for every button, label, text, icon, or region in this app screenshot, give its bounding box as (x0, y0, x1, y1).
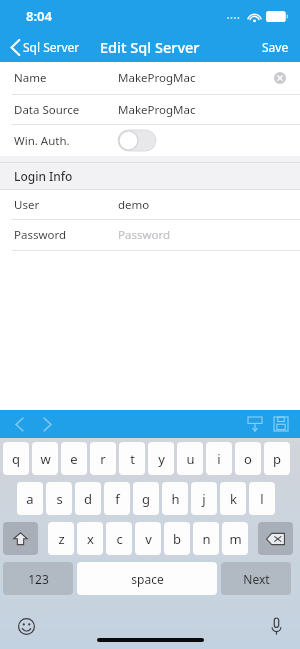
staticText: m (229, 530, 242, 548)
button[interactable]: Emoji (14, 614, 39, 639)
button[interactable]: a (17, 482, 43, 515)
staticText: Win. Auth. (14, 133, 118, 149)
button[interactable]: g (133, 482, 159, 515)
button[interactable]: Save (270, 413, 292, 435)
button[interactable]: Clear text (269, 67, 291, 89)
staticText: z (58, 530, 65, 548)
button[interactable]: z (48, 522, 74, 555)
staticText: g (142, 490, 150, 508)
button[interactable]: e (61, 442, 87, 475)
staticText: space (131, 571, 164, 587)
button[interactable]: l (249, 482, 275, 515)
button[interactable]: q (3, 442, 29, 475)
button[interactable]: Backspace (258, 522, 293, 555)
button[interactable]: Windows Authentication toggle (118, 130, 156, 151)
staticText: demo (118, 197, 150, 213)
button[interactable]: x (77, 522, 103, 555)
staticText: MakeProgMac (118, 70, 196, 86)
button[interactable]: Name (0, 62, 300, 94)
staticText: a (26, 490, 34, 508)
staticText: p (273, 450, 281, 468)
staticText: x (87, 530, 94, 548)
button[interactable]: k (220, 482, 246, 515)
staticText: d (84, 490, 92, 508)
staticText: e (70, 450, 78, 468)
staticText: i (217, 450, 221, 468)
staticText: k (230, 490, 237, 508)
staticText: l (260, 490, 264, 508)
staticText: Save (262, 39, 289, 55)
button[interactable]: o (235, 442, 261, 475)
staticText: Edit Sql Server (100, 37, 200, 57)
staticText: y (158, 450, 165, 468)
button[interactable]: i (206, 442, 232, 475)
button[interactable]: f (104, 482, 130, 515)
button[interactable]: r (90, 442, 116, 475)
button[interactable]: c (106, 522, 132, 555)
button[interactable]: Dictation (267, 614, 286, 639)
button[interactable]: j (191, 482, 217, 515)
button[interactable]: Data Source (0, 95, 300, 124)
button[interactable]: Password (0, 220, 300, 250)
button[interactable]: space (77, 562, 217, 595)
staticText: 8:04 (26, 7, 52, 25)
button[interactable]: 123 (3, 562, 73, 595)
button[interactable]: u (177, 442, 203, 475)
staticText: w (40, 450, 51, 468)
staticText: Data Source (14, 102, 118, 118)
button[interactable]: b (164, 522, 190, 555)
button[interactable]: d (75, 482, 101, 515)
staticText: f (115, 490, 120, 508)
staticText: Login Info (14, 168, 73, 184)
button[interactable]: Hide keyboard (244, 413, 266, 435)
button[interactable]: m (222, 522, 248, 555)
staticText: MakeProgMac (118, 102, 196, 118)
staticText: Password (118, 227, 171, 243)
staticText: r (100, 450, 106, 468)
staticText: q (12, 450, 20, 468)
staticText: s (56, 490, 63, 508)
button[interactable]: y (148, 442, 174, 475)
button[interactable]: Next field (38, 413, 57, 436)
button[interactable]: Sql Server (8, 36, 83, 58)
staticText: t (130, 450, 135, 468)
staticText: Sql Server (23, 39, 80, 55)
button[interactable]: Save (251, 33, 300, 61)
button[interactable]: User (0, 190, 300, 219)
button[interactable]: v (135, 522, 161, 555)
button[interactable]: n (193, 522, 219, 555)
button[interactable]: t (119, 442, 145, 475)
staticText: Name (14, 70, 118, 86)
staticText: n (202, 530, 211, 548)
button[interactable]: w (32, 442, 58, 475)
staticText: u (186, 450, 195, 468)
staticText: c (116, 530, 123, 548)
staticText: h (171, 490, 180, 508)
button[interactable]: p (264, 442, 290, 475)
button[interactable]: h (162, 482, 188, 515)
button[interactable]: Next (221, 562, 291, 595)
button[interactable]: Shift (3, 522, 38, 555)
staticText: j (202, 490, 206, 508)
staticText: Next (243, 571, 270, 587)
staticText: Password (14, 227, 118, 243)
staticText: o (244, 450, 252, 468)
button[interactable]: Win. Auth. (0, 125, 300, 156)
staticText: v (145, 530, 152, 548)
staticText: User (14, 197, 118, 213)
staticText: b (173, 530, 181, 548)
button[interactable]: Previous field (10, 413, 29, 436)
button[interactable]: s (46, 482, 72, 515)
staticText: 123 (28, 571, 49, 587)
